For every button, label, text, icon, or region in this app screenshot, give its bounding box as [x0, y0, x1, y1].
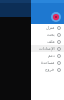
button[interactable]: الإعدادات	[31, 45, 64, 52]
staticText: منزل	[46, 25, 55, 30]
button[interactable]: بحث	[31, 31, 64, 38]
staticText: خروج	[45, 67, 55, 72]
button[interactable]: ملف	[31, 38, 64, 45]
button[interactable]: خروج	[31, 66, 64, 73]
button[interactable]: منزل	[31, 24, 64, 31]
staticText: ملف	[47, 39, 55, 44]
staticText: الإعدادات	[39, 46, 55, 51]
button[interactable]: مساعدة	[31, 59, 64, 66]
staticText: بحث	[47, 32, 55, 37]
staticText: مساعدة	[41, 60, 55, 65]
staticText: دعم	[48, 53, 55, 58]
button[interactable]: دعم	[31, 52, 64, 59]
